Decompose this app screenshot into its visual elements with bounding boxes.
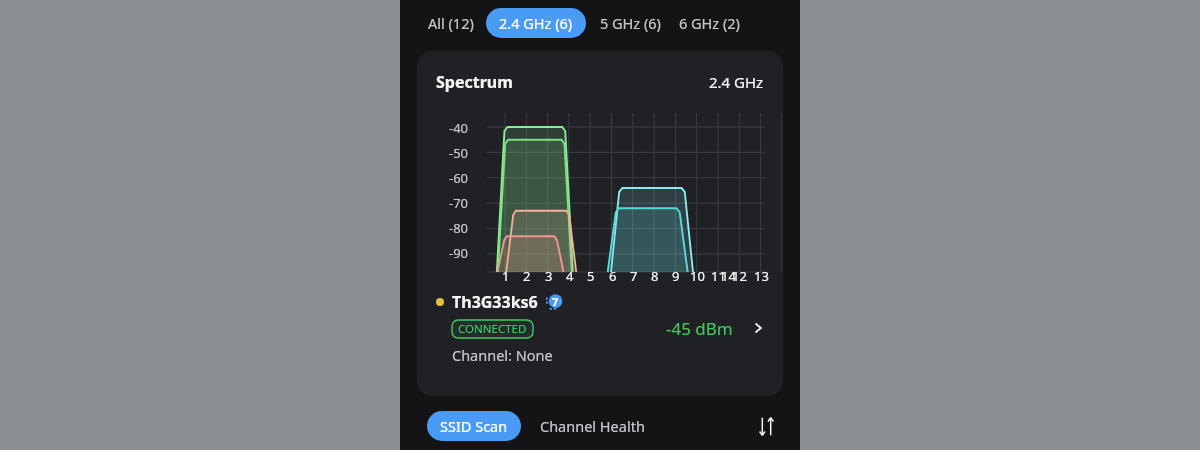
staticText: 8 [651,267,659,285]
staticText: 3 [545,267,553,285]
staticText: 2 [523,267,531,285]
button[interactable]: Th3G33ks6 [417,291,783,365]
staticText: 6 GHz (2) [679,13,740,33]
staticText: 9 [672,267,680,285]
staticText: -90 [449,244,469,262]
staticText: 7 [552,294,559,309]
staticText: Spectrum [436,71,513,93]
staticText: 7 [630,267,638,285]
staticText: -50 [449,144,469,162]
staticText: 6 [609,267,617,285]
button[interactable]: SSID Scan [427,411,521,441]
staticText: Channel Health [540,416,645,436]
staticText: All (12) [428,13,474,33]
staticText: 2.4 GHz [709,72,764,92]
staticText: -40 [449,119,469,137]
staticText: 11 [711,267,726,285]
staticText: 1 [502,267,510,285]
staticText: SSID Scan [440,416,508,436]
staticText: 2.4 GHz (6) [499,13,573,33]
staticText: 13 [754,267,769,285]
staticText: CONNECTED [458,321,527,337]
button[interactable]: 5 GHz (6) [599,8,662,38]
button[interactable]: 2.4 GHz (6) [486,8,586,38]
button[interactable]: Sort [750,410,782,442]
button[interactable]: 6 GHz (2) [678,8,741,38]
staticText: -45 dBm [666,317,733,340]
staticText: -70 [449,194,469,212]
other: Network details [749,319,767,337]
staticText: Channel: None [452,345,553,365]
staticText: 14 [721,267,736,285]
staticText: -60 [449,169,469,187]
staticText: Th3G33ks6 [452,291,538,313]
staticText: -80 [449,219,469,237]
staticText: 10 [690,267,705,285]
staticText: 4 [566,267,574,285]
staticText: 12 [732,267,747,285]
staticText: 5 GHz (6) [600,13,661,33]
staticText: 5 [587,267,595,285]
button[interactable]: Channel Health [536,410,649,442]
button[interactable]: All (12) [427,8,475,38]
